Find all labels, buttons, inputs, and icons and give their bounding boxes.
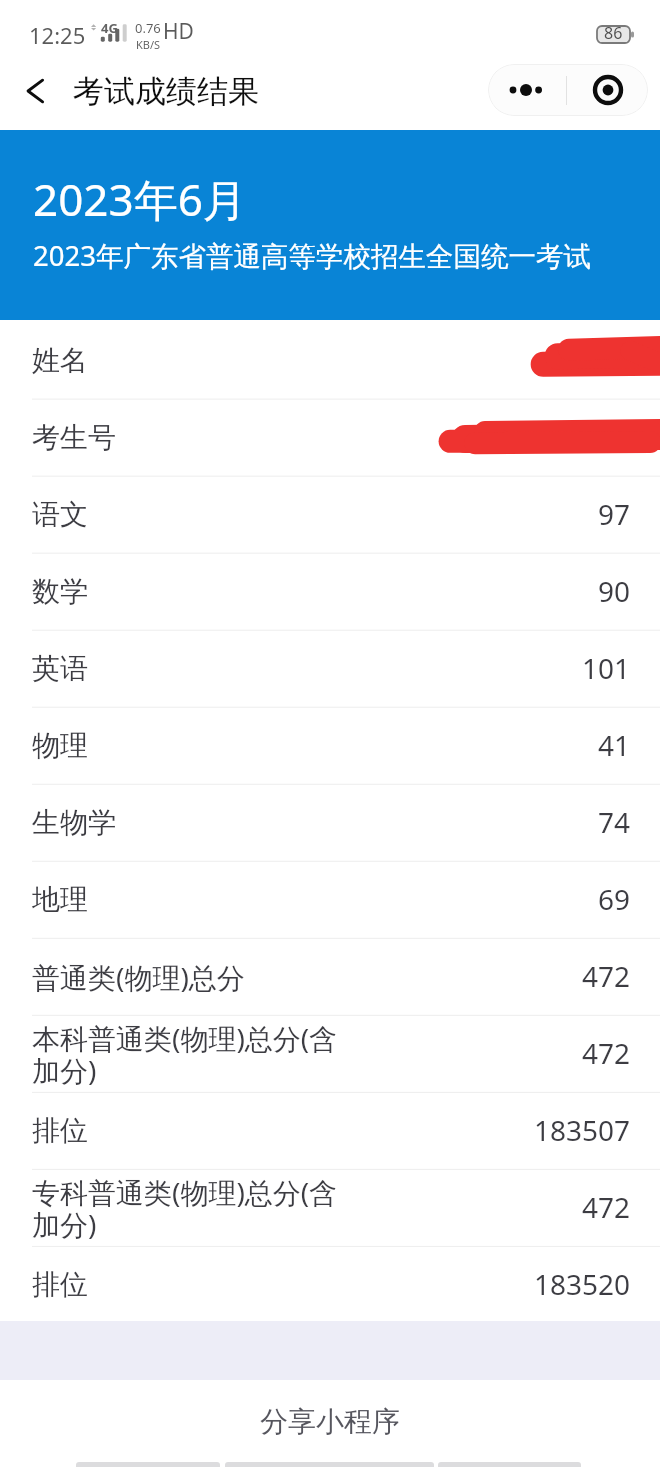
button[interactable]: 数学 bbox=[0, 551, 660, 628]
staticText: 97 bbox=[598, 495, 631, 533]
staticText: 排位 bbox=[32, 1267, 88, 1302]
staticText: 普通类(物理)总分 bbox=[32, 958, 245, 996]
staticText: 183520 bbox=[534, 1265, 631, 1303]
button[interactable]: 本科普通类(物理)总分(含 加分) bbox=[0, 1013, 660, 1090]
button[interactable]: 生物学 bbox=[0, 782, 660, 859]
button[interactable]: 分享小程序 bbox=[0, 1380, 660, 1442]
staticText: 本科普通类(物理)总分(含 加分) bbox=[32, 1019, 338, 1089]
button[interactable]: 英语 bbox=[0, 628, 660, 705]
staticText: 90 bbox=[598, 572, 631, 610]
button[interactable]: 专科普通类(物理)总分(含 加分) bbox=[0, 1167, 660, 1244]
button[interactable]: 排位 bbox=[0, 1244, 660, 1321]
staticText: 74 bbox=[598, 803, 631, 841]
staticText: 考生号 bbox=[32, 420, 116, 455]
button[interactable]: 地理 bbox=[0, 859, 660, 936]
staticText: 86 bbox=[604, 22, 623, 44]
staticText: KB/S bbox=[136, 37, 161, 52]
staticText: 472 bbox=[582, 1188, 631, 1226]
staticText: 472 bbox=[582, 1034, 631, 1072]
staticText: 专科普通类(物理)总分(含 加分) bbox=[32, 1173, 338, 1243]
staticText: 2023年广东省普通高等学校招生全国统一考试 bbox=[33, 237, 591, 275]
staticText: 英语 bbox=[32, 651, 88, 686]
button[interactable]: 姓名 bbox=[0, 320, 660, 397]
staticText: 4G bbox=[101, 19, 118, 37]
staticText: 183507 bbox=[534, 1111, 631, 1149]
button[interactable]: Close mini program bbox=[567, 64, 648, 116]
button[interactable]: 普通类(物理)总分 bbox=[0, 936, 660, 1013]
staticText: 考试成绩结果 bbox=[73, 72, 259, 111]
button[interactable]: 语文 bbox=[0, 474, 660, 551]
staticText: 姓名 bbox=[32, 343, 88, 378]
staticText: 2023年6月 bbox=[33, 169, 247, 229]
button[interactable]: 物理 bbox=[0, 705, 660, 782]
staticText: HD bbox=[163, 17, 194, 46]
staticText: 分享小程序 bbox=[260, 1404, 400, 1439]
staticText: 12:25 bbox=[29, 20, 86, 50]
staticText: 语文 bbox=[32, 497, 88, 532]
button[interactable]: Back bbox=[8, 58, 66, 130]
button[interactable]: 排位 bbox=[0, 1090, 660, 1167]
staticText: 41 bbox=[598, 726, 631, 764]
staticText: 0.76 bbox=[135, 19, 161, 37]
staticText: 数学 bbox=[32, 574, 88, 609]
staticText: 472 bbox=[582, 957, 631, 995]
staticText: 生物学 bbox=[32, 805, 116, 840]
staticText: 69 bbox=[598, 880, 631, 918]
button[interactable]: 考生号 bbox=[0, 397, 660, 474]
staticText: 地理 bbox=[32, 882, 88, 917]
staticText: 101 bbox=[582, 649, 631, 687]
button[interactable]: More options bbox=[488, 64, 566, 116]
staticText: 排位 bbox=[32, 1113, 88, 1148]
staticText: 物理 bbox=[32, 728, 88, 763]
